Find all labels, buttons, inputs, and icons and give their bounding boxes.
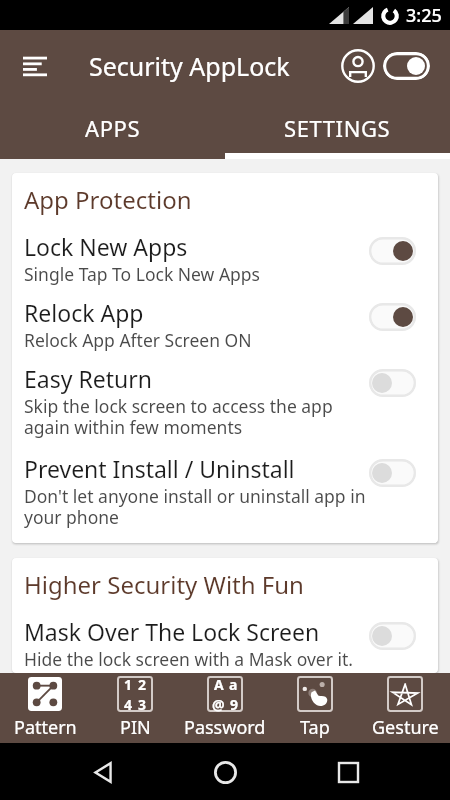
- staticText: Relock App: [24, 297, 144, 328]
- button[interactable]: Master toggle: [383, 52, 430, 80]
- staticText: 3:25: [406, 3, 442, 28]
- staticText: 4: [124, 695, 133, 714]
- staticText: 1: [124, 675, 133, 694]
- button[interactable]: APPS: [0, 102, 225, 159]
- button[interactable]: 1: [90, 673, 180, 743]
- staticText: Don't let anyone install or uninstall ap…: [24, 484, 367, 529]
- staticText: Single Tap To Lock New Apps: [24, 262, 261, 286]
- staticText: Easy Return: [24, 363, 152, 394]
- staticText: @: [212, 695, 225, 714]
- button[interactable]: Easy Return: [12, 363, 438, 453]
- button[interactable]: Recents: [328, 752, 368, 792]
- staticText: Prevent Install / Uninstall: [24, 453, 295, 484]
- staticText: 3: [138, 695, 147, 714]
- staticText: Higher Security With Fun: [24, 568, 304, 601]
- button[interactable]: Menu: [12, 43, 58, 89]
- staticText: a: [229, 675, 238, 694]
- button[interactable]: Relock App: [12, 297, 438, 363]
- staticText: APPS: [85, 113, 141, 143]
- staticText: App Protection: [24, 183, 192, 216]
- staticText: Skip the lock screen to access the app a…: [24, 394, 367, 439]
- staticText: PIN: [120, 715, 151, 740]
- button[interactable]: Home: [205, 752, 245, 792]
- staticText: 2: [138, 675, 147, 694]
- staticText: Pattern: [14, 715, 77, 740]
- button[interactable]: Mask Over The Lock Screen: [12, 616, 438, 673]
- staticText: Relock App After Screen ON: [24, 328, 252, 352]
- staticText: Password: [184, 715, 266, 740]
- button[interactable]: Lock New Apps: [12, 231, 438, 297]
- button[interactable]: Account: [339, 47, 377, 85]
- button[interactable]: Gesture: [360, 673, 450, 743]
- staticText: 9: [230, 695, 239, 714]
- staticText: Security AppLock: [89, 49, 290, 83]
- button[interactable]: Pattern: [0, 673, 90, 743]
- staticText: SETTINGS: [284, 113, 391, 143]
- staticText: Gesture: [372, 715, 439, 740]
- staticText: Tap: [300, 715, 330, 740]
- button[interactable]: SETTINGS: [225, 102, 450, 159]
- button[interactable]: Prevent Install / Uninstall: [12, 453, 438, 543]
- staticText: Mask Over The Lock Screen: [24, 616, 320, 647]
- button[interactable]: Back: [83, 752, 123, 792]
- staticText: Lock New Apps: [24, 231, 188, 262]
- staticText: A: [214, 675, 224, 694]
- button[interactable]: Tap: [270, 673, 360, 743]
- staticText: Hide the lock screen with a Mask over it…: [24, 647, 353, 671]
- button[interactable]: A: [180, 673, 270, 743]
